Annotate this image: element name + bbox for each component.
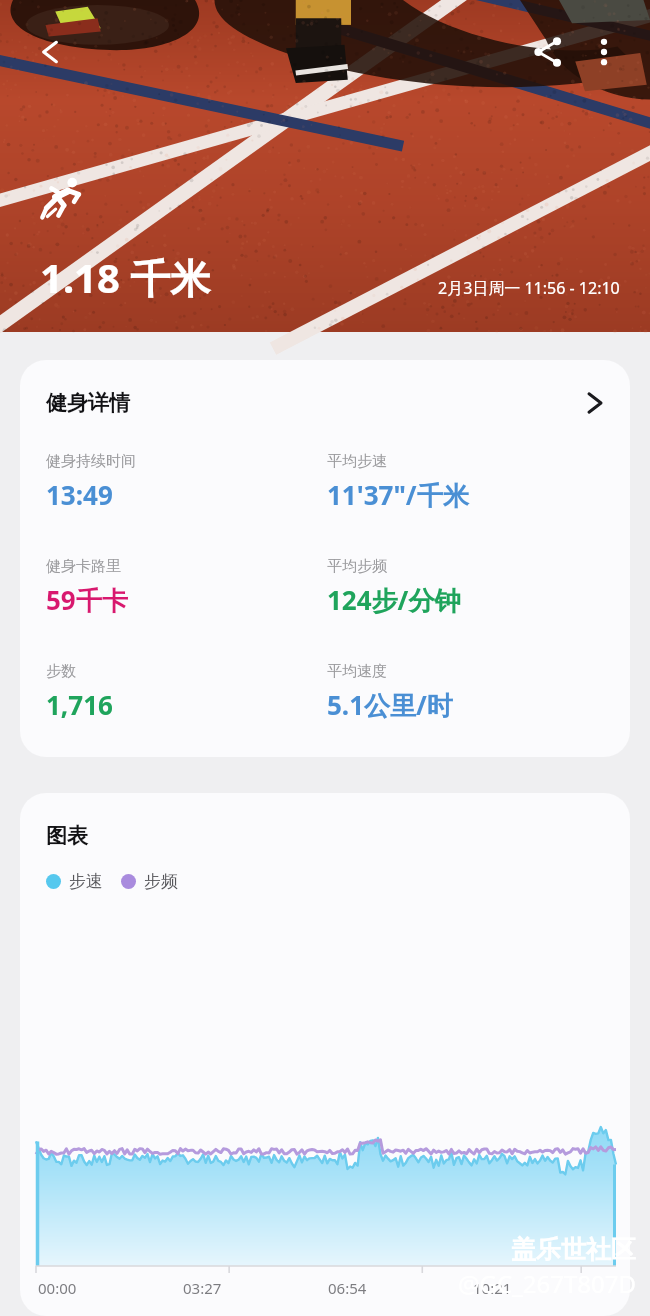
staticText: 平均步频 xyxy=(327,557,387,576)
staticText: 2月3日周一 11:56 - 12:10 xyxy=(438,277,620,299)
staticText: 1.18 千米 xyxy=(40,250,211,305)
staticText: 10:21 xyxy=(473,1278,512,1298)
button[interactable]: 平均步速 xyxy=(327,452,608,513)
staticText: 06:54 xyxy=(328,1278,367,1298)
staticText: 步数 xyxy=(46,662,76,681)
button[interactable]: Share xyxy=(520,24,576,80)
staticText: 图表 xyxy=(46,823,88,849)
staticText: 11'37"/千米 xyxy=(327,477,469,513)
button[interactable]: 健身详情 xyxy=(20,360,630,757)
staticText: 平均速度 xyxy=(327,662,387,681)
staticText: 健身详情 xyxy=(46,390,130,416)
button[interactable]: 健身卡路里 xyxy=(46,557,327,618)
button[interactable]: 步数 xyxy=(46,662,327,722)
button[interactable]: 平均速度 xyxy=(327,662,608,723)
staticText: 健身卡路里 xyxy=(46,557,121,576)
staticText: 1,716 xyxy=(46,687,113,722)
staticText: 盖乐世社区 xyxy=(511,1234,636,1265)
button[interactable]: More options xyxy=(576,24,632,80)
button[interactable]: 图表 xyxy=(20,793,630,1316)
button[interactable]: 平均步频 xyxy=(327,557,608,618)
button[interactable]: Back xyxy=(22,24,78,80)
staticText: 124步/分钟 xyxy=(327,582,461,618)
staticText: 健身持续时间 xyxy=(46,452,136,471)
staticText: 平均步速 xyxy=(327,452,387,471)
staticText: 59千卡 xyxy=(46,582,128,618)
staticText: 13:49 xyxy=(46,477,113,512)
staticText: 03:27 xyxy=(183,1278,222,1298)
staticText: 00:00 xyxy=(38,1278,77,1298)
staticText: 步速 xyxy=(69,871,103,892)
staticText: @GC_267T807D xyxy=(457,1267,636,1300)
staticText: 步频 xyxy=(144,871,178,892)
staticText: 5.1公里/时 xyxy=(327,687,453,723)
button[interactable]: 健身持续时间 xyxy=(46,452,327,512)
